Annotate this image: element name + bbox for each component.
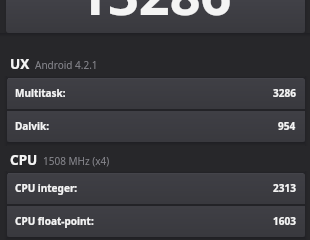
button[interactable]: CPU float-point: xyxy=(7,206,305,237)
staticText: 1508 MHz (x4) xyxy=(43,154,110,168)
button[interactable]: 13286 xyxy=(6,0,305,33)
staticText: 13286 xyxy=(77,0,232,31)
button[interactable]: CPU integer: xyxy=(7,173,305,204)
staticText: Android 4.2.1 xyxy=(35,58,98,72)
staticText: 3286 xyxy=(273,86,296,100)
staticText: CPU float-point: xyxy=(15,214,94,228)
staticText: 1603 xyxy=(273,214,296,228)
button[interactable]: Dalvik: xyxy=(7,111,305,142)
staticText: 2313 xyxy=(273,181,296,195)
staticText: CPU integer: xyxy=(15,181,78,195)
staticText: UX xyxy=(10,55,30,73)
staticText: CPU xyxy=(10,151,38,169)
button[interactable]: Multitask: xyxy=(7,78,305,109)
staticText: Multitask: xyxy=(15,86,66,100)
staticText: 954 xyxy=(278,119,296,133)
staticText: Dalvik: xyxy=(15,119,49,133)
